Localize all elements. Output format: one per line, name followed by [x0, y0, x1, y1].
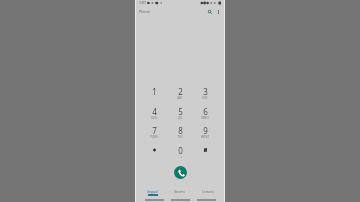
staticText: 8: [178, 125, 183, 136]
button[interactable]: 0: [169, 145, 191, 163]
button[interactable]: 5: [169, 106, 191, 124]
staticText: GHI: [151, 116, 157, 120]
button[interactable]: 6: [194, 106, 216, 124]
staticText: 3: [203, 86, 208, 97]
staticText: 1:07: [139, 0, 147, 5]
button[interactable]: Search: [205, 7, 214, 16]
button[interactable]: [143, 145, 165, 163]
staticText: Recents: [174, 190, 185, 194]
staticText: 0: [178, 145, 183, 156]
staticText: Contacts: [202, 190, 214, 194]
staticText: 6: [203, 106, 208, 117]
staticText: ABC: [177, 96, 183, 100]
staticText: TUV: [177, 135, 183, 139]
button[interactable]: Call: [174, 166, 187, 179]
staticText: DEF: [202, 96, 208, 100]
button[interactable]: 1: [143, 86, 165, 104]
button[interactable]: Keypad: [139, 190, 166, 201]
button[interactable]: 7: [143, 125, 165, 143]
button[interactable]: 3: [194, 86, 216, 104]
staticText: +: [180, 155, 182, 159]
button[interactable]: 2: [169, 86, 191, 104]
staticText: MNO: [201, 116, 209, 120]
staticText: 5: [178, 106, 183, 117]
button[interactable]: 4: [143, 106, 165, 124]
button[interactable]: Recents: [166, 190, 193, 201]
staticText: 2: [178, 86, 183, 97]
staticText: PQRS: [150, 135, 158, 139]
staticText: JKL: [178, 116, 183, 120]
staticText: Keypad: [147, 190, 158, 194]
staticText: WXYZ: [201, 135, 209, 139]
staticText: 9: [203, 125, 208, 136]
button[interactable]: [194, 145, 216, 163]
staticText: Phone: [139, 9, 150, 14]
button[interactable]: More options: [214, 7, 223, 16]
staticText: 4: [152, 106, 157, 117]
button[interactable]: 8: [169, 125, 191, 143]
staticText: 1: [152, 86, 157, 97]
staticText: 7: [152, 125, 157, 136]
button[interactable]: 9: [194, 125, 216, 143]
button[interactable]: Contacts: [194, 190, 221, 201]
